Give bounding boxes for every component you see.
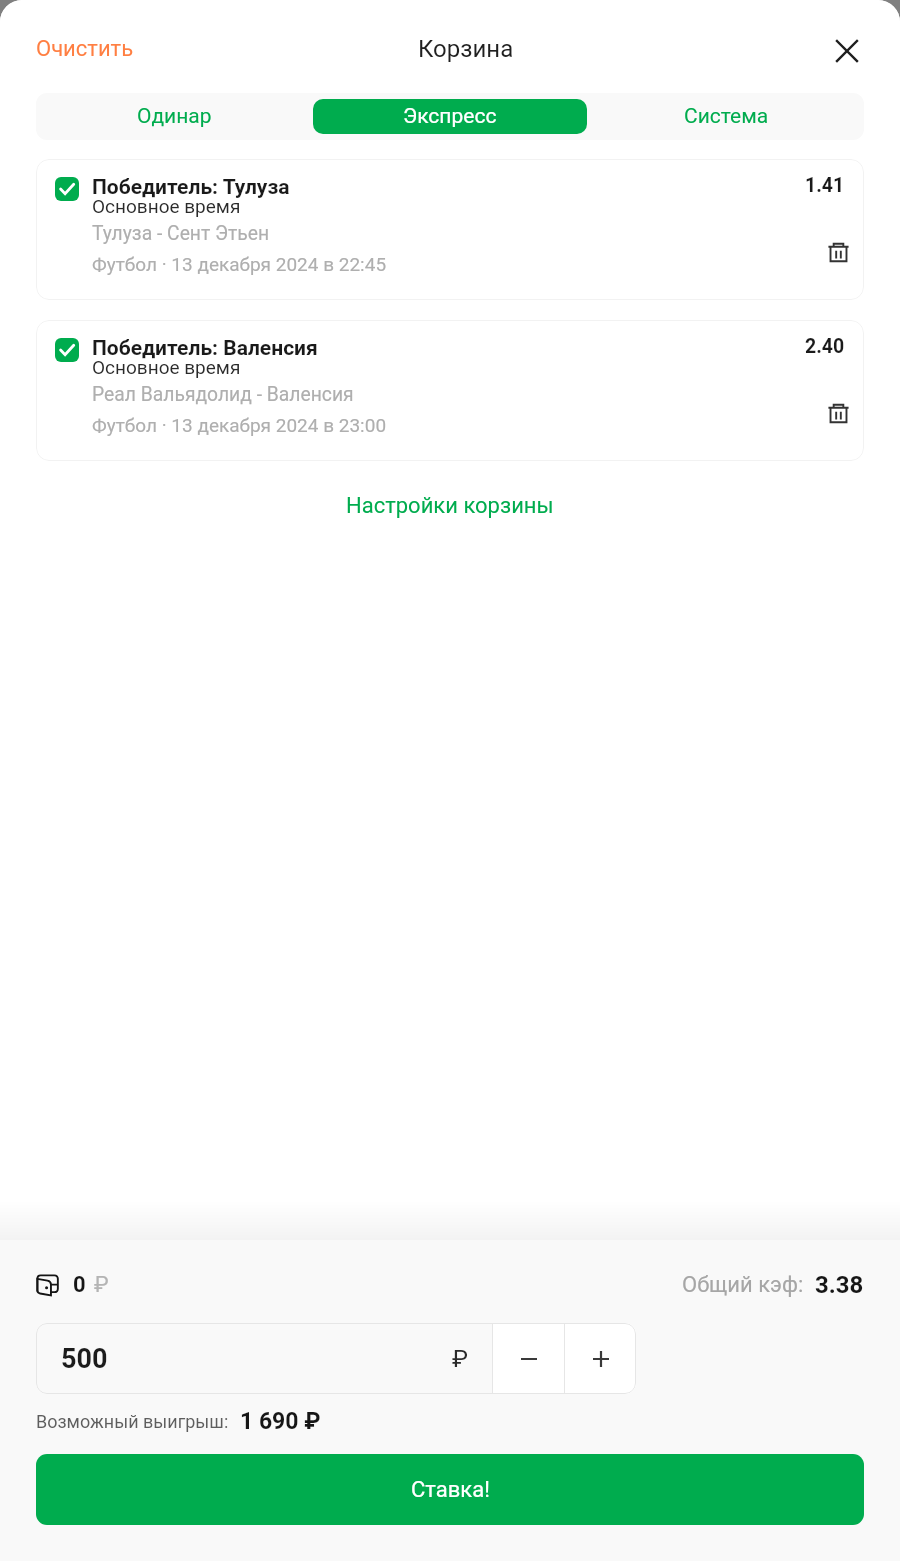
- button[interactable]: Уменьшить ставку: [493, 1323, 564, 1394]
- staticText: Общий кэф:: [682, 1272, 804, 1298]
- staticText: 2.40: [805, 335, 845, 358]
- button[interactable]: Увеличить ставку: [565, 1323, 636, 1394]
- staticText: Система: [684, 104, 769, 129]
- staticText: 1.41: [805, 174, 845, 197]
- button[interactable]: 500: [36, 1323, 492, 1394]
- staticText: Тулуза - Сент Этьен: [92, 222, 270, 245]
- button[interactable]: Удалить: [816, 391, 860, 435]
- button[interactable]: Ставка!: [36, 1454, 864, 1525]
- staticText: ₽: [94, 1272, 109, 1298]
- button[interactable]: Выбрано: [36, 159, 864, 300]
- staticText: 0: [73, 1272, 86, 1298]
- staticText: Основное время: [92, 195, 241, 217]
- button[interactable]: Система: [589, 99, 863, 134]
- staticText: Одинар: [137, 104, 212, 129]
- button[interactable]: Одинар: [37, 99, 311, 134]
- button[interactable]: Выбрано: [55, 177, 79, 201]
- button[interactable]: Выбрано: [36, 320, 864, 461]
- staticText: 3.38: [815, 1271, 864, 1299]
- staticText: Настройки корзины: [346, 493, 554, 519]
- staticText: Футбол · 13 декабря 2024 в 23:00: [92, 414, 387, 436]
- button[interactable]: Настройки корзины: [334, 487, 566, 525]
- staticText: Экспресс: [403, 104, 497, 129]
- staticText: Реал Вальядолид - Валенсия: [92, 383, 354, 406]
- staticText: ₽: [452, 1345, 468, 1373]
- button[interactable]: Удалить: [816, 230, 860, 274]
- staticText: Победитель: Валенсия: [92, 336, 318, 361]
- staticText: Футбол · 13 декабря 2024 в 22:45: [92, 253, 387, 275]
- staticText: 500: [61, 1343, 108, 1375]
- staticText: Победитель: Тулуза: [92, 175, 290, 200]
- staticText: Возможный выигрыш:: [36, 1411, 229, 1432]
- button[interactable]: Очистить: [18, 24, 152, 70]
- staticText: Корзина: [418, 35, 514, 63]
- button[interactable]: Выбрано: [55, 338, 79, 362]
- staticText: Ставка!: [411, 1477, 490, 1503]
- button[interactable]: Экспресс: [313, 99, 587, 134]
- button[interactable]: Закрыть: [823, 23, 871, 71]
- staticText: Очистить: [36, 36, 134, 62]
- staticText: Основное время: [92, 356, 241, 378]
- staticText: 1 690 ₽: [240, 1408, 321, 1435]
